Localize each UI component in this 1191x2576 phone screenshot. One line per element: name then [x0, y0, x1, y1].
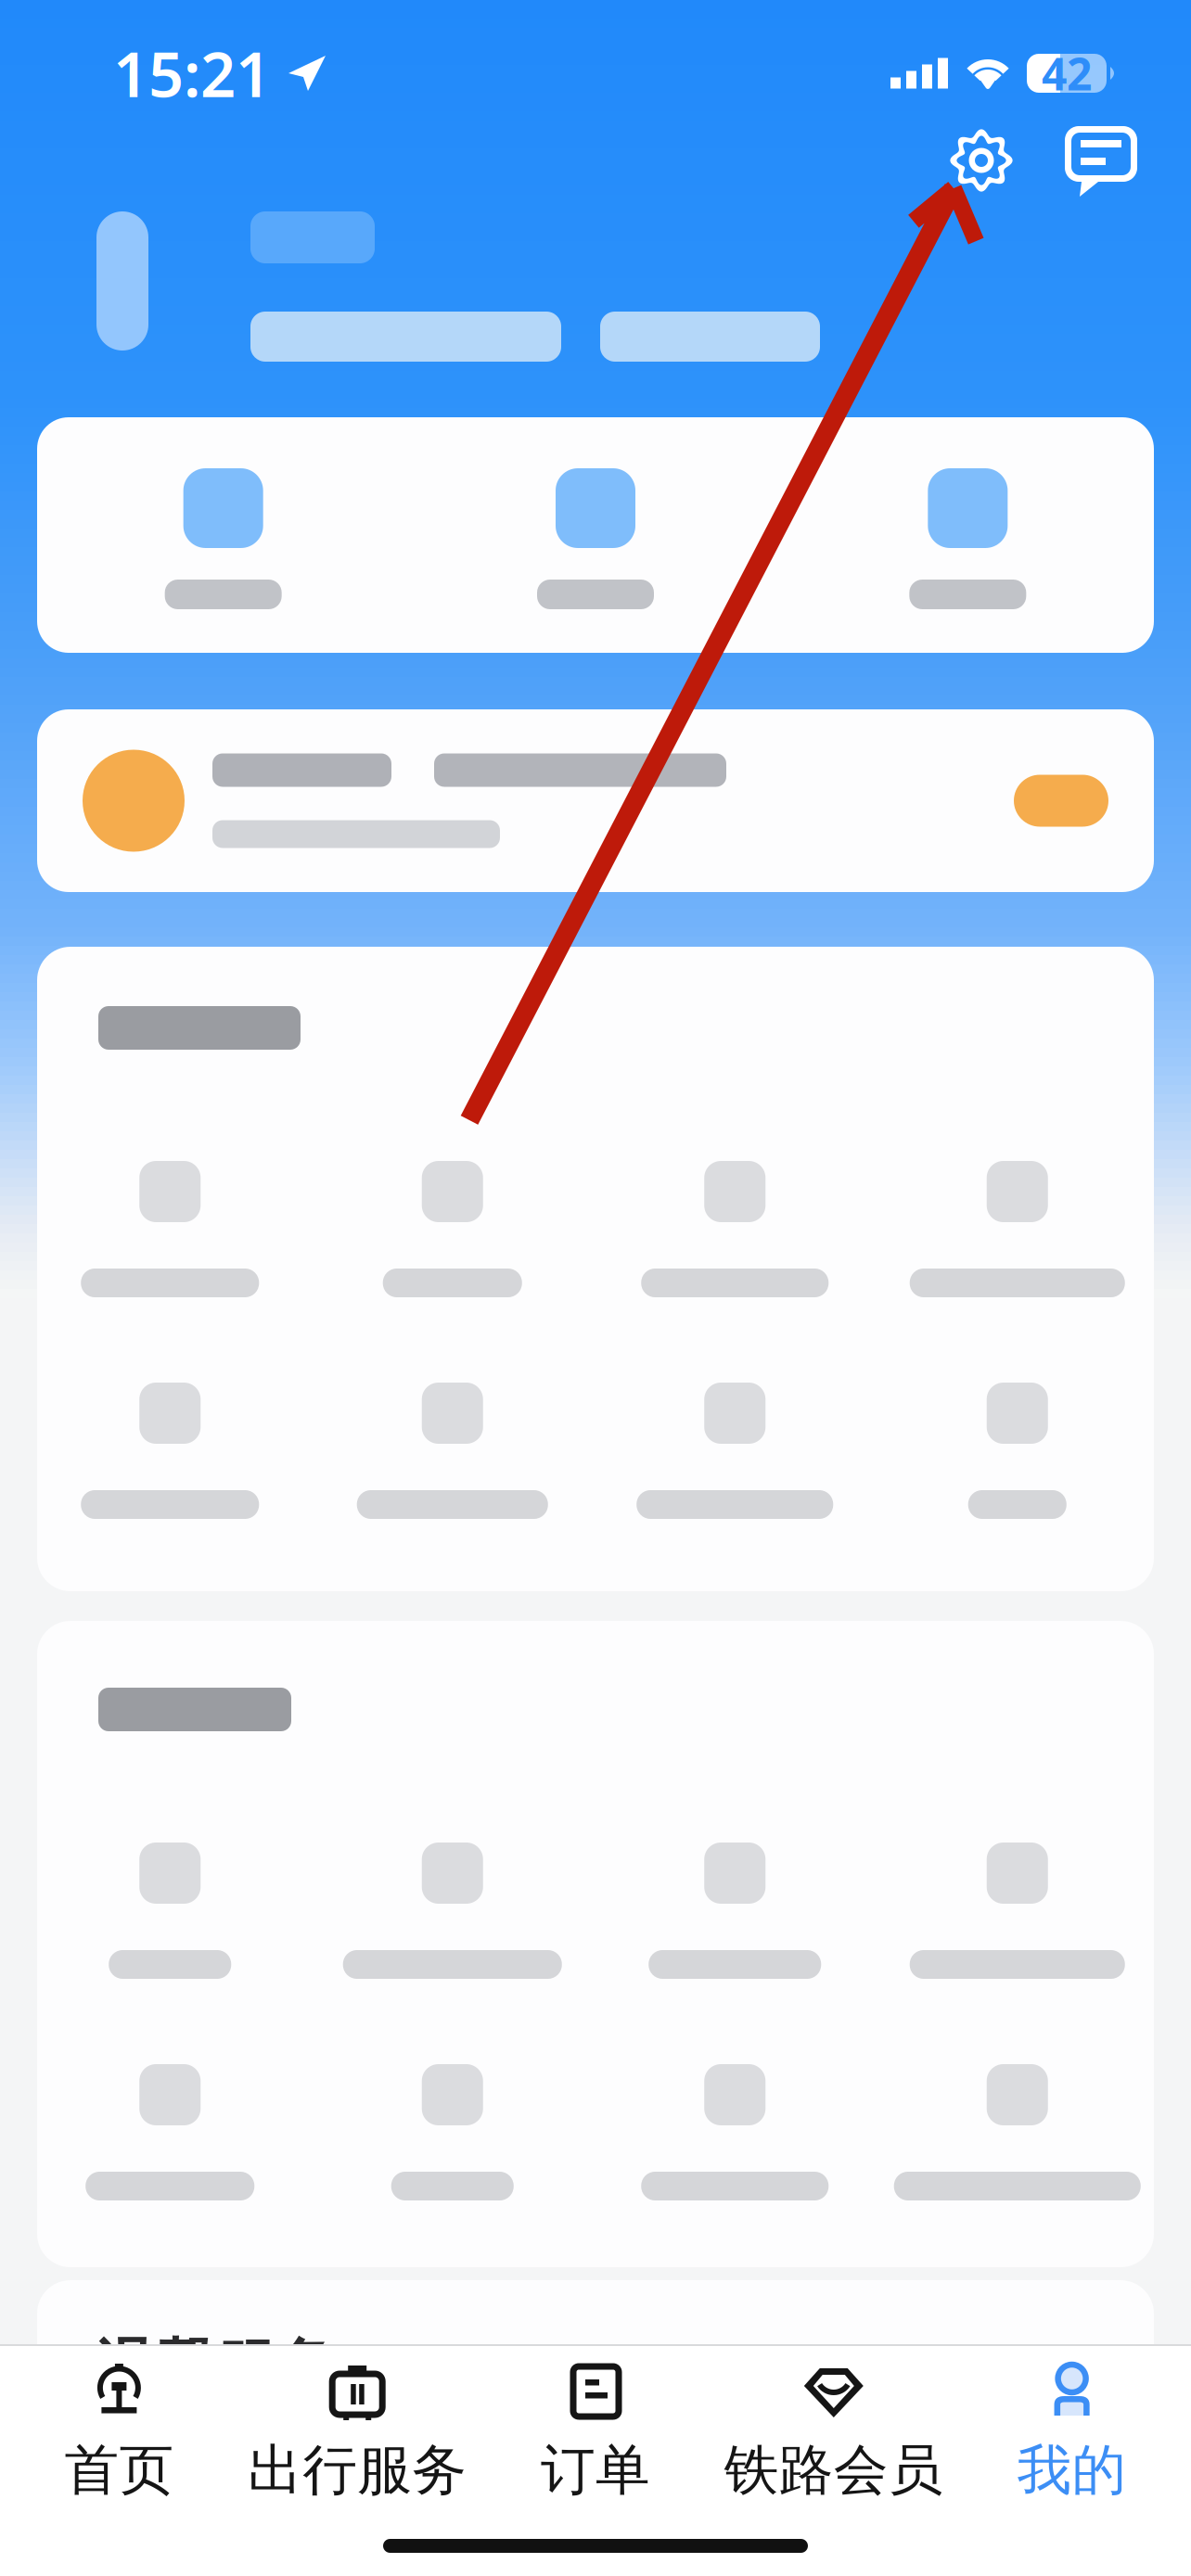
staticText: 铁路会员	[724, 2437, 943, 2504]
staticText: 42	[1042, 44, 1092, 103]
staticText: 订单	[541, 2437, 650, 2504]
button[interactable]: 我的	[953, 2346, 1191, 2515]
button[interactable]: 出行服务	[238, 2346, 476, 2515]
button[interactable]: 消息	[1061, 124, 1141, 198]
button[interactable]: 铁路会员	[715, 2346, 953, 2515]
staticText: 温馨服务	[95, 2330, 336, 2405]
staticText: 15:21	[113, 32, 271, 114]
button[interactable]: 设置	[946, 125, 1018, 198]
staticText: 我的	[1017, 2437, 1127, 2504]
button[interactable]: 订单	[476, 2346, 715, 2515]
staticText: 出行服务	[248, 2437, 467, 2504]
button[interactable]: 首页	[0, 2346, 238, 2515]
staticText: 首页	[64, 2437, 174, 2504]
